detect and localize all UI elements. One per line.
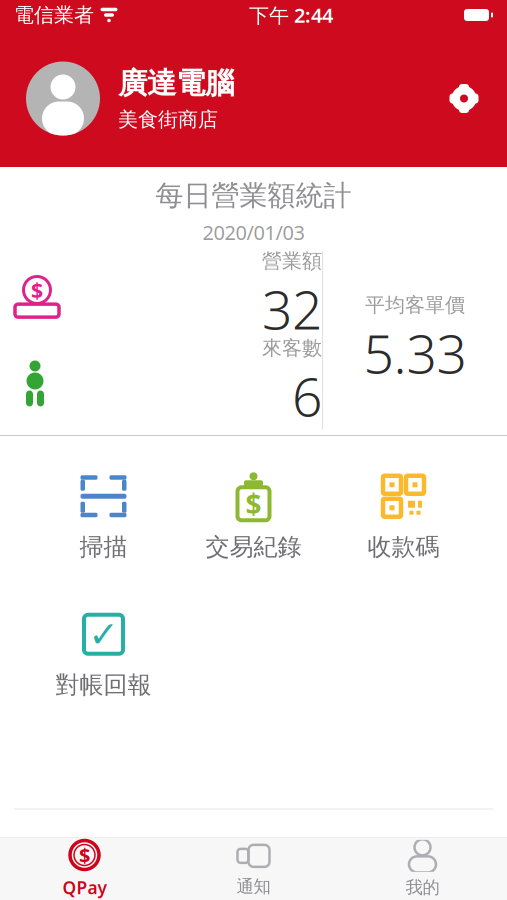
staticText: 電信業者	[14, 3, 94, 27]
button[interactable]: 我的	[338, 838, 507, 900]
button[interactable]: $	[0, 838, 169, 900]
staticText: 2020/01/03	[202, 219, 304, 245]
staticText: ✓	[88, 614, 118, 655]
staticText: 美食街商店	[118, 107, 218, 132]
staticText: 每日營業額統計	[155, 178, 351, 213]
staticText: 我的	[405, 877, 439, 898]
staticText: 下午 2:44	[249, 2, 333, 28]
staticText: 營業額	[262, 249, 322, 273]
staticText: $	[79, 842, 90, 868]
staticText: 通知	[236, 876, 270, 897]
button[interactable]: ✓	[28, 600, 178, 710]
staticText: 掃描	[79, 532, 127, 562]
button[interactable]: 設定	[435, 69, 493, 127]
staticText: 收款碼	[367, 532, 439, 562]
button[interactable]: 通知	[169, 838, 338, 900]
staticText: $	[245, 485, 261, 522]
staticText: 32	[262, 273, 322, 344]
button[interactable]: 掃描	[28, 462, 178, 572]
staticText: 來客數	[262, 336, 322, 360]
staticText: 廣達電腦	[118, 65, 234, 101]
staticText: $	[31, 276, 43, 304]
staticText: 6	[292, 360, 322, 431]
staticText: 對帳回報	[55, 670, 151, 700]
staticText: QPay	[62, 876, 106, 899]
button[interactable]: 收款碼	[328, 462, 478, 572]
staticText: 交易紀錄	[205, 532, 301, 562]
button[interactable]: $	[178, 462, 328, 572]
staticText: 平均客單價	[365, 293, 465, 317]
staticText: 5.33	[363, 317, 466, 388]
